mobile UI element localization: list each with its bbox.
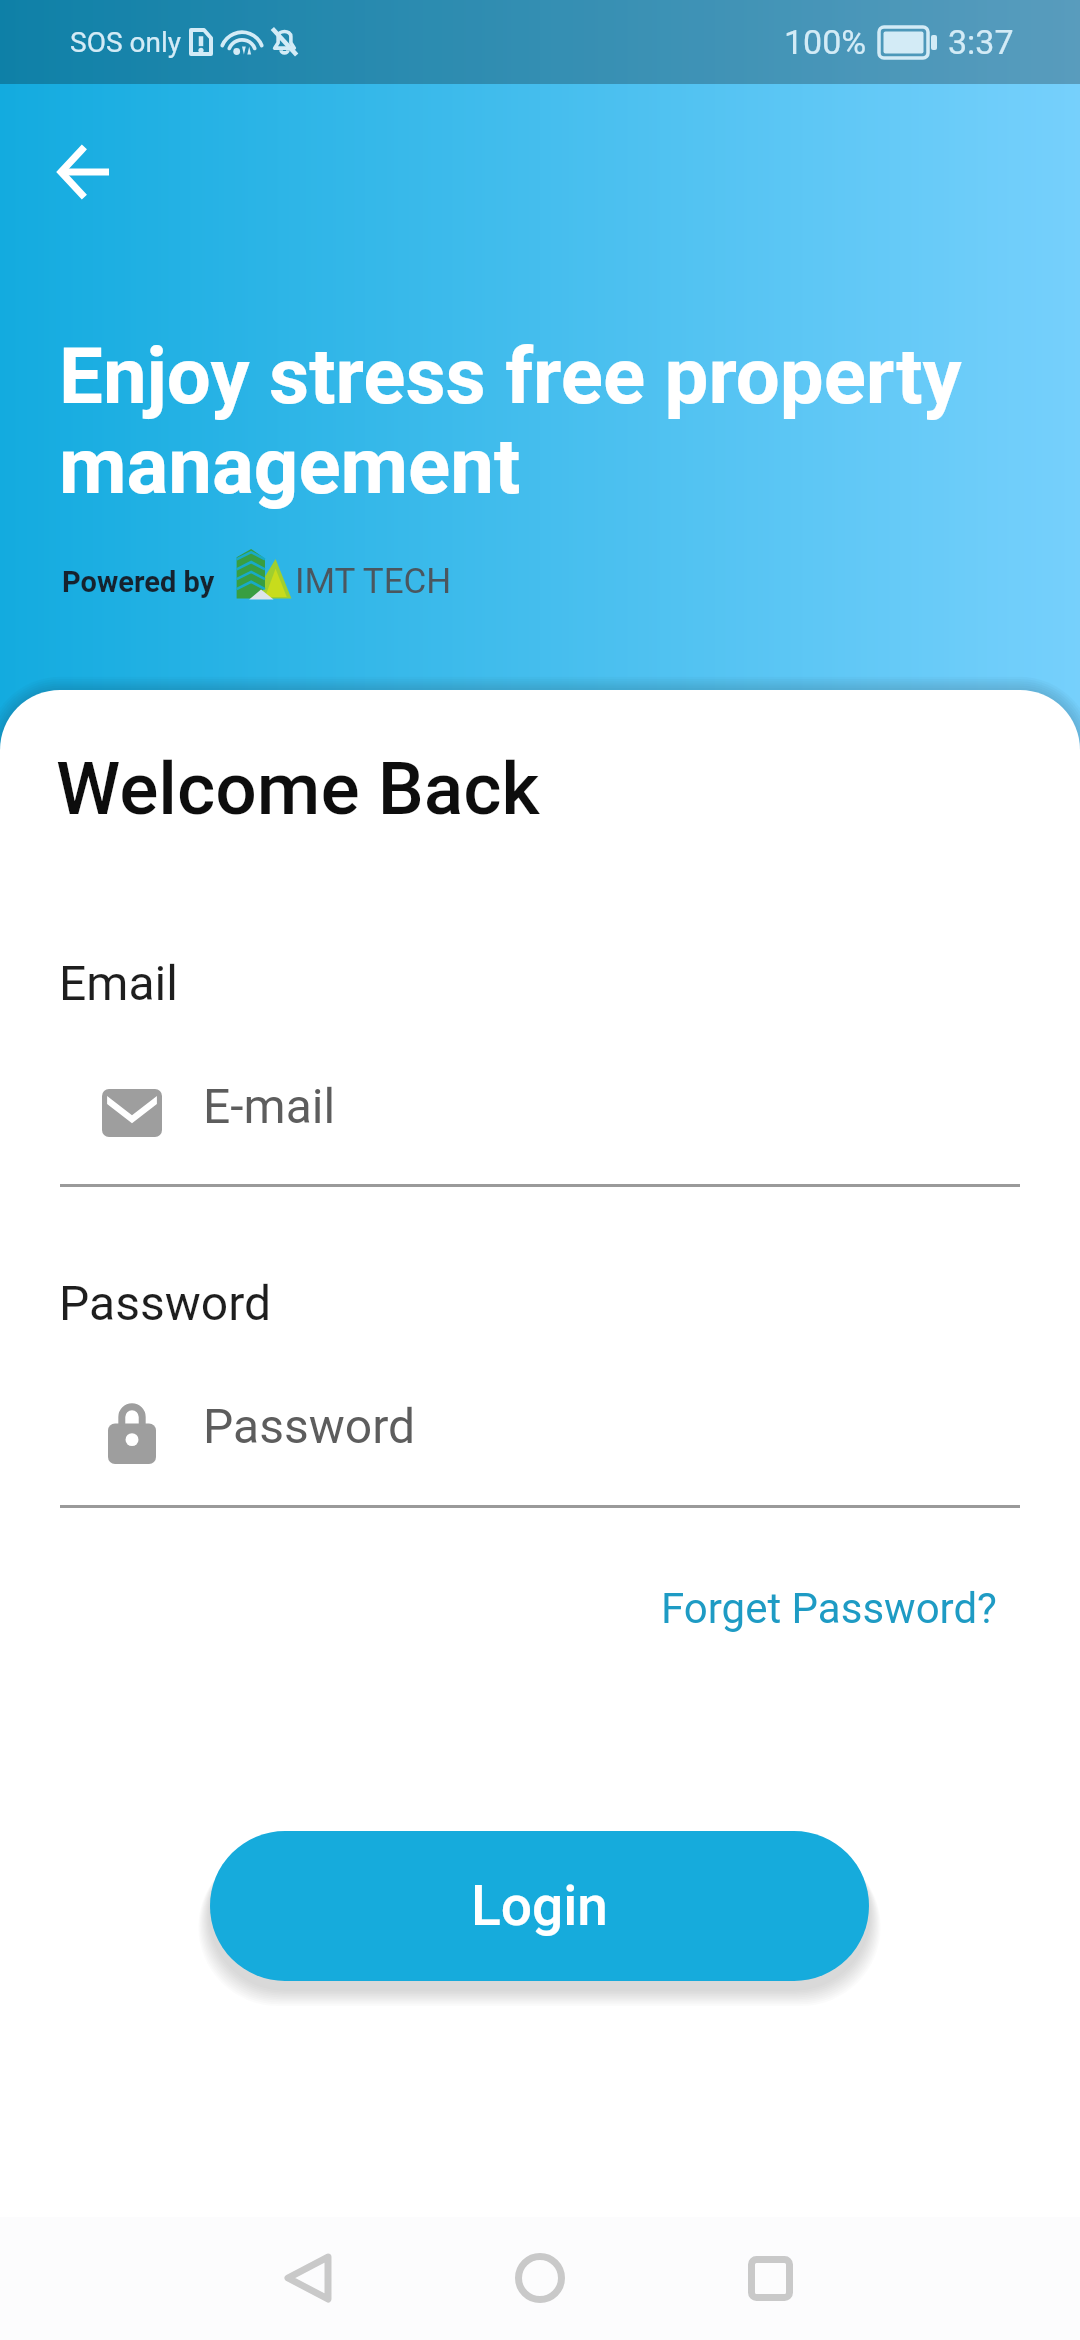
staticText: Forget Password? — [661, 1584, 997, 1633]
staticText: Enjoy stress free property management — [59, 331, 962, 512]
staticText: Login — [471, 1874, 608, 1938]
staticText: E-mail — [203, 1078, 336, 1134]
button[interactable]: Forget Password? — [651, 1572, 1007, 1645]
staticText: Welcome Back — [56, 746, 540, 832]
button[interactable]: E-mail — [60, 1041, 1020, 1187]
button[interactable]: Home — [485, 2223, 595, 2333]
button[interactable]: Back — [36, 124, 132, 220]
button[interactable]: Password — [60, 1362, 1020, 1508]
button[interactable]: Login — [210, 1831, 869, 1981]
staticText: SOS only — [70, 26, 181, 59]
staticText: 3:37 — [948, 22, 1014, 62]
staticText: Password — [203, 1398, 416, 1454]
staticText: Email — [59, 955, 178, 1011]
button[interactable]: Back — [253, 2223, 363, 2333]
staticText: Powered by — [62, 565, 215, 599]
staticText: Password — [59, 1275, 272, 1331]
staticText: IMT TECH — [295, 561, 452, 602]
staticText: 100% — [784, 22, 867, 62]
button[interactable]: Recent apps — [715, 2223, 825, 2333]
